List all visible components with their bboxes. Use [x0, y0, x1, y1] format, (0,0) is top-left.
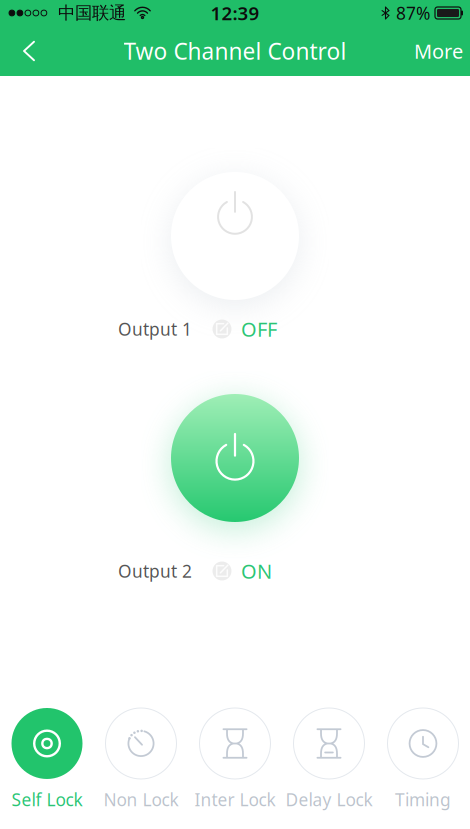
button[interactable]: Rename Output 1	[203, 314, 241, 344]
button[interactable]: Inter Lock	[188, 708, 282, 811]
staticText: More	[414, 38, 463, 64]
staticText: OFF	[241, 316, 277, 342]
staticText: Timing	[395, 788, 451, 811]
staticText: ON	[241, 558, 272, 584]
button[interactable]: Output 1 power	[171, 172, 299, 300]
staticText: Output 1	[118, 317, 192, 340]
button[interactable]: Timing	[376, 708, 470, 811]
button[interactable]: More	[400, 26, 470, 76]
button[interactable]: Back	[0, 26, 54, 76]
staticText: Two Channel Control	[123, 36, 346, 66]
button[interactable]: Delay Lock	[282, 708, 376, 811]
staticText: Output 2	[118, 559, 192, 582]
button[interactable]: Self Lock	[0, 708, 94, 811]
staticText: Inter Lock	[194, 788, 275, 811]
button[interactable]: Output 2 power	[171, 394, 299, 522]
staticText: Non Lock	[103, 788, 178, 811]
button[interactable]: Non Lock	[94, 708, 188, 811]
staticText: 87%	[396, 1, 430, 24]
staticText: 12:39	[210, 1, 259, 25]
staticText: Self Lock	[11, 788, 82, 811]
button[interactable]: Rename Output 2	[203, 556, 241, 586]
staticText: 中国联通	[58, 2, 126, 24]
staticText: Delay Lock	[285, 788, 372, 811]
